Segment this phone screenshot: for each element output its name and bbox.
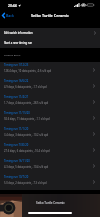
button[interactable]: Timing run 1/12/23: [0, 62, 100, 78]
staticText: Timing run 1/12/23: [4, 63, 29, 67]
staticText: 4.3 days, 5 data points, -10.4 s/d spd: [4, 165, 49, 169]
staticText: 4.9 days, 6 data points, -1.7 s/d spd: [4, 85, 47, 89]
staticText: 128.4 days, 10 data points, -0.6 s/d spd: [4, 69, 52, 73]
staticText: 20:44: [8, 3, 17, 8]
staticText: Timing run 16/6/22: [4, 79, 29, 83]
staticText: Timing run 11/1/20: [4, 127, 29, 131]
staticText: Edit watch information: [4, 31, 94, 35]
staticText: Seiko Turtle Ceramic: [31, 13, 69, 18]
button[interactable]: Timing run 16/6/22: [0, 78, 100, 94]
staticText: 1.7 days, 4 data points, -28.5 s/d spd: [4, 101, 49, 105]
button[interactable]: Timing run 10/7/20: [0, 174, 100, 190]
button[interactable]: Edit watch information: [0, 28, 100, 38]
staticText: 5.0 days, 2 data points, -7.3 s/d spd: [4, 181, 47, 185]
button[interactable]: Timing run 11/15/20: [0, 110, 100, 126]
button[interactable]: Timing run 16/11/20: [0, 158, 100, 174]
staticText: 92.6 days, 11 data points, -1.1 s/d spd: [4, 117, 50, 121]
staticText: Timing run 7/30/20: [4, 143, 29, 147]
staticText: Timing run 11/4/21: [4, 95, 29, 99]
button[interactable]: Timing run 11/1/20: [0, 126, 100, 142]
staticText: TIMING RUNS: [4, 53, 21, 56]
button[interactable]: Start a new timing run: [0, 38, 100, 48]
staticText: Back: [6, 13, 14, 18]
button[interactable]: Back: [1, 11, 15, 20]
staticText: 3.4 days, 3 data points, -10.2 s/d spd: [4, 133, 49, 137]
button[interactable]: Timing run 7/30/20: [0, 142, 100, 158]
staticText: 27.6 days, 6 data points, -10.4 s/d spd: [4, 149, 50, 153]
staticText: Timing run 16/11/20: [4, 159, 30, 163]
staticText: Timing run 11/15/20: [4, 111, 30, 115]
staticText: Timing run 10/7/20: [4, 175, 29, 179]
staticText: Start a new timing run: [4, 41, 96, 45]
staticText: Seiko Turtle Ceramic: [36, 201, 65, 205]
button[interactable]: Timing run 11/4/21: [0, 94, 100, 110]
